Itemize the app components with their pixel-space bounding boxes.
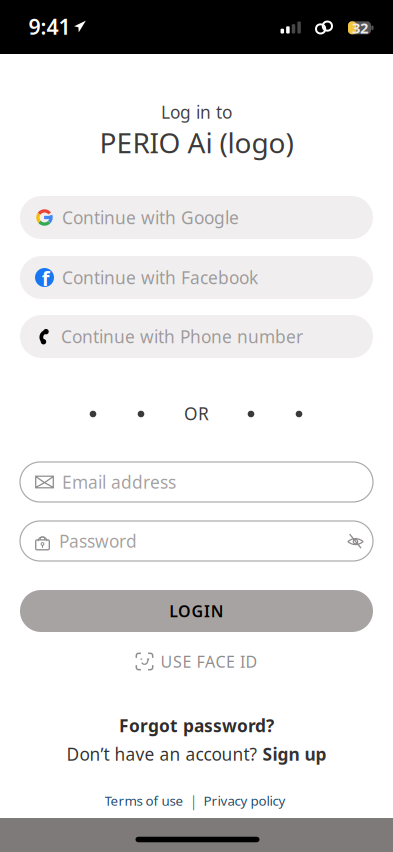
staticText: USE FACE ID (160, 651, 257, 672)
button[interactable]: Password (20, 521, 373, 561)
button[interactable]: Continue with Phone number (20, 315, 373, 358)
staticText: Privacy policy (203, 792, 285, 809)
button[interactable]: Privacy policy (203, 792, 285, 809)
staticText: Terms of use (104, 792, 183, 809)
staticText: Don’t have an account? Sign up (66, 742, 326, 765)
staticText: PERIO Ai (logo) (99, 124, 293, 161)
staticText: Log in to (161, 100, 232, 123)
button[interactable]: Continue with Google (20, 196, 373, 239)
staticText: Continue with Phone number (61, 325, 303, 348)
button[interactable]: Terms of use (104, 792, 183, 809)
button[interactable]: Don’t have an account? Sign up (66, 742, 326, 765)
button[interactable]: USE FACE ID (135, 651, 257, 672)
button[interactable]: Forgot password? (119, 714, 274, 737)
staticText: LOGIN (169, 600, 224, 622)
button[interactable]: Email address (20, 462, 373, 502)
staticText: Continue with Facebook (62, 266, 258, 289)
staticText: f (42, 265, 50, 292)
staticText: | (189, 791, 197, 810)
staticText: 9:41 (28, 12, 70, 41)
staticText: 32 (352, 18, 368, 38)
staticText: OR (184, 402, 209, 425)
staticText: Forgot password? (119, 714, 274, 737)
staticText: Password (59, 529, 137, 552)
button[interactable]: f (20, 256, 373, 299)
button[interactable]: LOGIN (20, 590, 373, 632)
staticText: Email address (62, 470, 176, 493)
staticText: Continue with Google (62, 206, 239, 229)
